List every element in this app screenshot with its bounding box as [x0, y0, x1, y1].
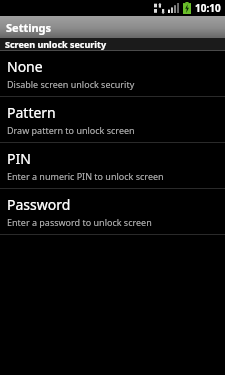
button[interactable]: PIN [0, 143, 225, 188]
staticText: 10:10 [195, 1, 221, 15]
other: Battery charging [183, 2, 191, 14]
staticText: Enter a password to unlock screen [7, 216, 152, 228]
staticText: PIN [7, 149, 31, 168]
staticText: Disable screen unlock security [7, 78, 135, 90]
button[interactable]: Password [0, 189, 225, 234]
staticText: Enter a numeric PIN to unlock screen [7, 170, 164, 182]
other: Signal strength [168, 3, 179, 13]
button[interactable]: None [0, 51, 225, 96]
staticText: Settings [6, 20, 52, 35]
staticText: Pattern [7, 103, 56, 122]
button[interactable]: Pattern [0, 97, 225, 142]
other: Mobile data 3G [154, 3, 164, 14]
staticText: None [7, 57, 43, 76]
staticText: Draw pattern to unlock screen [7, 124, 135, 136]
staticText: Password [7, 195, 71, 214]
staticText: Screen unlock security [5, 38, 107, 50]
